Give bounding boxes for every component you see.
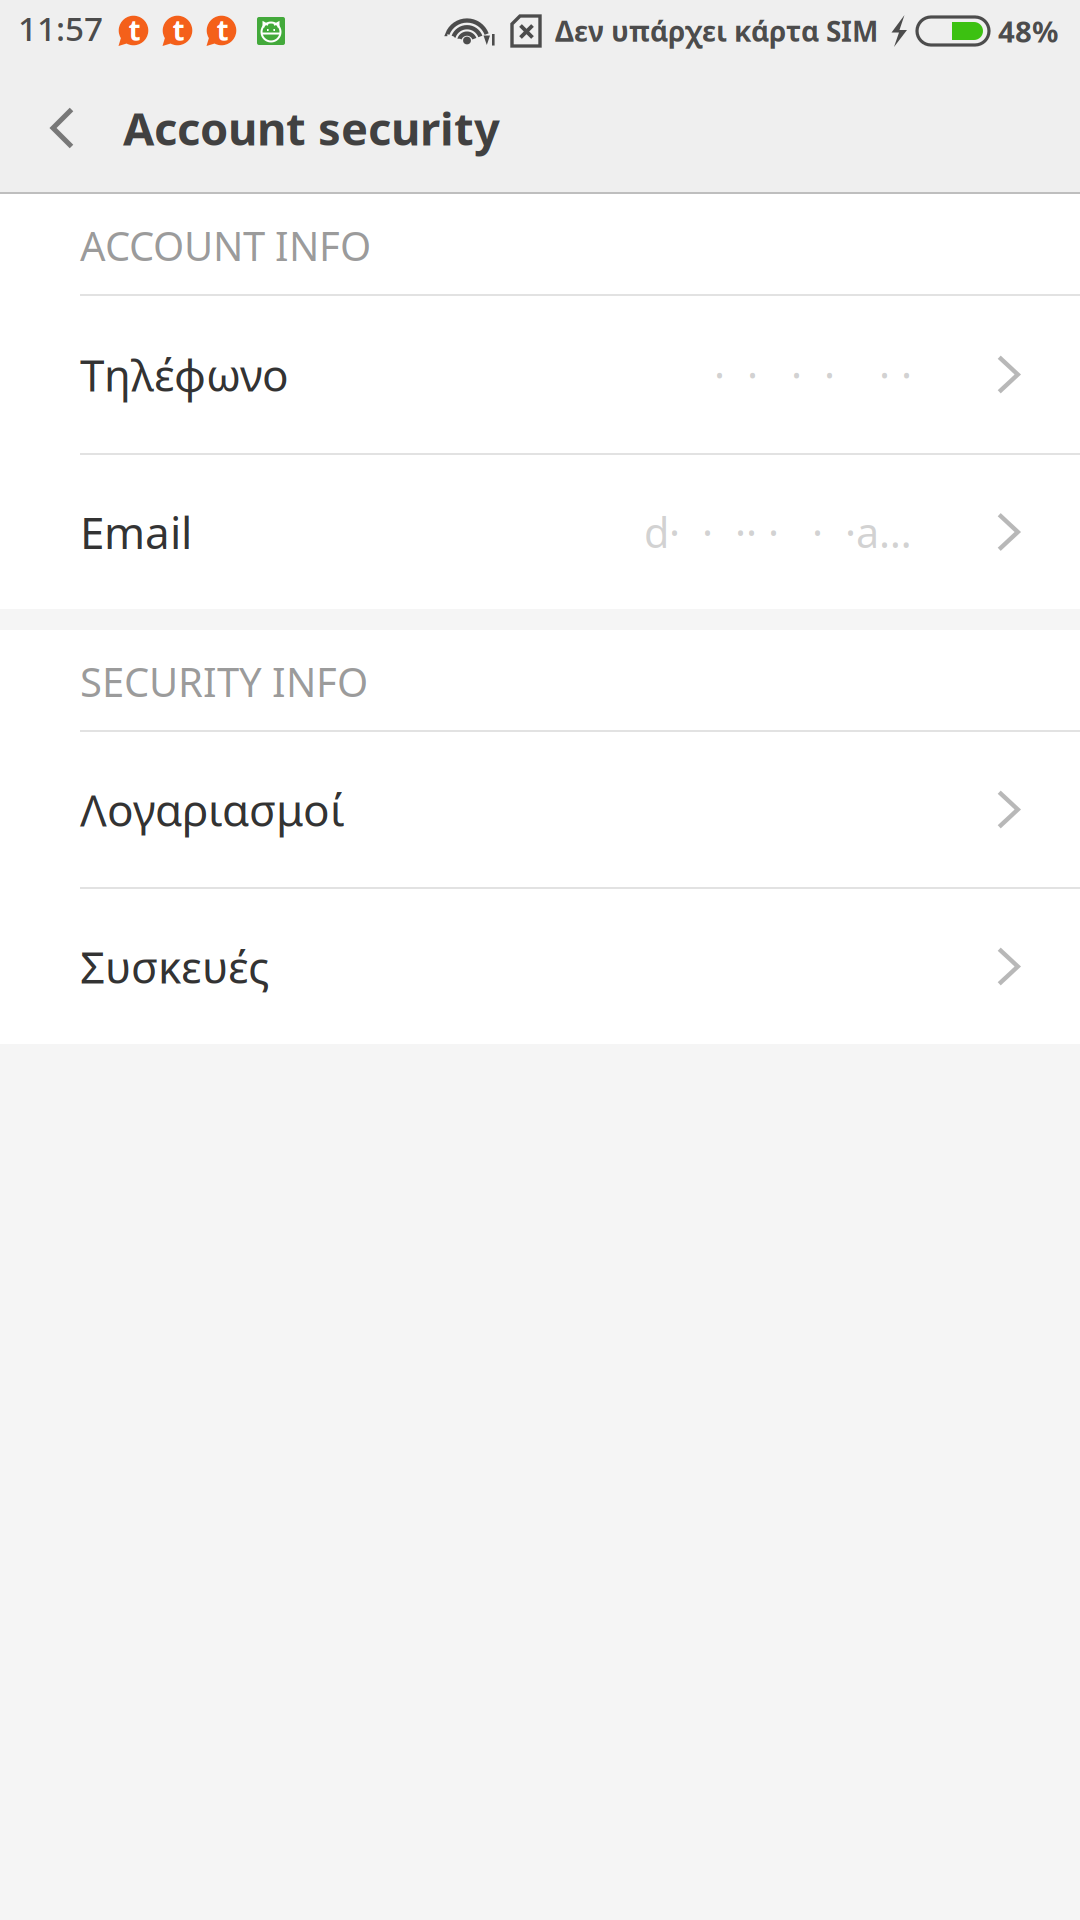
button[interactable]: Email [0, 455, 1080, 609]
staticText: Συσκευές [80, 937, 269, 996]
button[interactable]: Τηλέφωνο [0, 296, 1080, 453]
button[interactable]: Λογαριασμοί [0, 732, 1080, 887]
staticText: Email [80, 503, 192, 561]
staticText: · · · · · · [714, 347, 912, 402]
staticText: Account security [123, 98, 500, 158]
staticText: d· · ·· · · ·a… [644, 505, 912, 559]
staticText: Τηλέφωνο [80, 345, 289, 404]
staticText: t [128, 11, 140, 49]
staticText: 11:57 [18, 6, 103, 50]
button[interactable]: Συσκευές [0, 889, 1080, 1044]
staticText: t [172, 11, 184, 49]
staticText: t [216, 11, 228, 49]
staticText: SECURITY INFO [80, 655, 368, 708]
staticText: Λογαριασμοί [80, 780, 345, 839]
staticText: ACCOUNT INFO [80, 219, 371, 272]
button[interactable]: Back [0, 62, 118, 194]
staticText: 48% [998, 11, 1058, 50]
staticText: Δεν υπάρχει κάρτα SIM [555, 12, 878, 50]
